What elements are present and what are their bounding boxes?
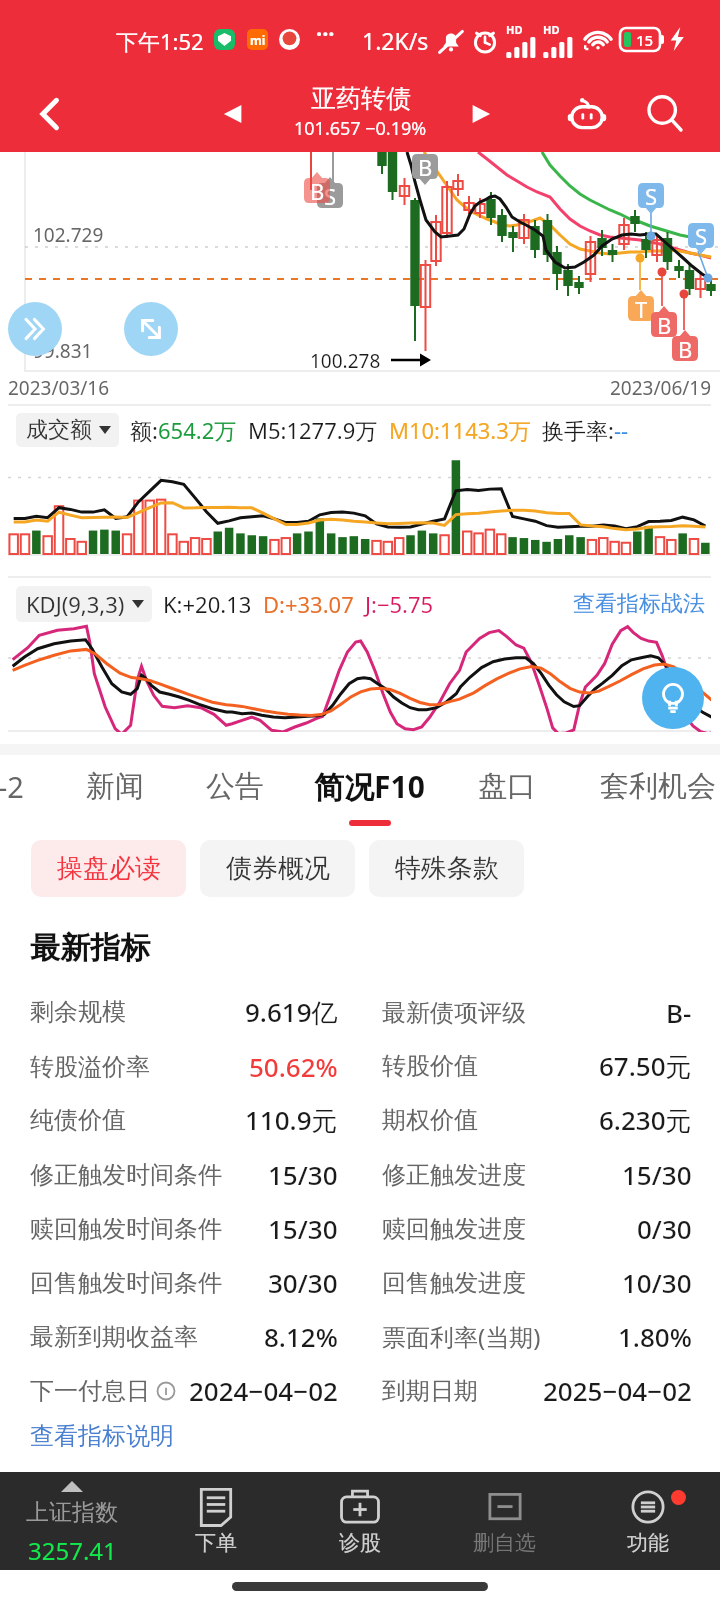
staticText: 特殊条款	[395, 852, 499, 885]
staticText: 赎回触发时间条件	[30, 1214, 222, 1244]
staticText: 转股溢价率	[30, 1052, 150, 1082]
staticText: 10/30	[622, 1265, 692, 1300]
staticText: 亚药转债	[311, 83, 411, 114]
staticText: 2025−04−02	[543, 1373, 692, 1408]
staticText: S	[645, 181, 658, 211]
button[interactable]: 删自选	[432, 1472, 576, 1570]
button[interactable]: Fullscreen	[124, 302, 178, 356]
staticText: 0/30	[637, 1211, 692, 1246]
staticText: B	[678, 334, 693, 364]
staticText: 简况F10	[314, 766, 425, 807]
staticText: 票面利率(当期)	[382, 1320, 541, 1353]
staticText: 1.2K/s	[362, 25, 429, 56]
button[interactable]: 成交额	[16, 413, 119, 447]
staticText: D:+33.07	[263, 589, 354, 619]
staticText: 67.50元	[599, 1048, 692, 1084]
staticText: 删自选	[473, 1530, 536, 1556]
button[interactable]: 公告	[205, 758, 265, 814]
staticText: 换手率:	[542, 415, 614, 445]
staticText: 100.278	[310, 348, 381, 372]
staticText: 纯债价值	[30, 1105, 126, 1135]
staticText: 9.619亿	[245, 994, 338, 1030]
staticText: B	[657, 310, 672, 340]
staticText: 2024−04−02	[189, 1373, 338, 1408]
staticText: -2	[0, 767, 24, 806]
button[interactable]: KDJ(9,3,3)	[16, 586, 152, 622]
staticText: K:+20.13	[163, 589, 252, 619]
button[interactable]: 操盘必读	[31, 840, 186, 897]
button[interactable]: 简况F10	[303, 758, 435, 814]
staticText: 新闻	[86, 768, 144, 805]
staticText: 下午1:52	[116, 26, 204, 56]
button[interactable]: 特殊条款	[369, 840, 524, 897]
staticText: 最新债项评级	[382, 998, 526, 1028]
button[interactable]: Tips	[642, 667, 704, 729]
staticText: M5:1277.9万	[248, 415, 378, 445]
button[interactable]: Next stock	[456, 89, 506, 139]
button[interactable]: Previous stock	[208, 89, 258, 139]
button[interactable]: Scroll right	[8, 302, 62, 356]
staticText: 赎回触发进度	[382, 1214, 526, 1244]
button[interactable]: 新闻	[85, 758, 145, 814]
button[interactable]: AI assistant	[556, 83, 618, 145]
staticText: 盘口	[478, 768, 536, 805]
button[interactable]: 诊股	[288, 1472, 432, 1570]
staticText: T	[635, 294, 648, 324]
staticText: ···	[316, 18, 335, 48]
button[interactable]: 套利机会	[595, 758, 720, 814]
staticText: 下单	[195, 1530, 237, 1556]
staticText: 50.62%	[249, 1049, 338, 1084]
staticText: 1.80%	[618, 1319, 692, 1354]
staticText: 修正触发时间条件	[30, 1160, 222, 1190]
staticText: 债券概况	[226, 852, 330, 885]
staticText: 8.12%	[264, 1319, 338, 1354]
staticText: 最新到期收益率	[30, 1322, 198, 1352]
staticText: 15/30	[268, 1157, 338, 1192]
staticText: 到期日期	[382, 1376, 478, 1406]
staticText: 2023/06/19	[610, 375, 712, 401]
staticText: 剩余规模	[30, 997, 126, 1027]
staticText: 6.230元	[599, 1102, 692, 1138]
staticText: 功能	[627, 1530, 669, 1556]
button[interactable]: -2	[0, 758, 60, 814]
button[interactable]: Back	[20, 84, 80, 144]
staticText: 转股价值	[382, 1051, 478, 1081]
button[interactable]: 盘口	[477, 758, 537, 814]
button[interactable]: 查看指标战法	[573, 590, 705, 618]
staticText: J:−5.75	[365, 589, 434, 619]
staticText: 上证指数	[26, 1498, 118, 1527]
staticText: 15/30	[268, 1211, 338, 1246]
staticText: 成交额	[26, 416, 92, 444]
staticText: 额:	[130, 415, 158, 445]
staticText: M10:1143.3万	[389, 415, 531, 445]
button[interactable]: Search	[634, 83, 696, 145]
button[interactable]: 上证指数	[0, 1472, 144, 1570]
staticText: 套利机会	[600, 768, 716, 805]
staticText: 30/30	[268, 1265, 338, 1300]
staticText: S	[324, 181, 337, 211]
staticText: 101.657 −0.19%	[294, 116, 427, 141]
staticText: 102.729	[33, 222, 104, 248]
staticText: 回售触发进度	[382, 1268, 526, 1298]
staticText: 操盘必读	[57, 852, 161, 885]
staticText: 下一付息日	[30, 1376, 150, 1406]
staticText: KDJ(9,3,3)	[26, 589, 125, 619]
staticText: 654.2万	[158, 415, 237, 445]
button[interactable]: 查看指标说明	[30, 1421, 174, 1451]
button[interactable]: 下单	[144, 1472, 288, 1570]
staticText: HD	[543, 22, 560, 37]
staticText: B-	[666, 995, 692, 1030]
staticText: 回售触发时间条件	[30, 1268, 222, 1298]
staticText: 3257.41	[28, 1534, 117, 1567]
staticText: B	[418, 152, 433, 182]
button[interactable]: 功能	[576, 1472, 720, 1570]
staticText: 2023/03/16	[8, 375, 110, 401]
staticText: 99.831	[33, 338, 93, 364]
staticText: 公告	[206, 768, 264, 805]
staticText: 期权价值	[382, 1105, 478, 1135]
staticText: --	[614, 415, 629, 445]
button[interactable]: 债券概况	[200, 840, 355, 897]
staticText: 修正触发进度	[382, 1160, 526, 1190]
staticText: 诊股	[339, 1530, 381, 1556]
staticText: S	[695, 221, 708, 251]
